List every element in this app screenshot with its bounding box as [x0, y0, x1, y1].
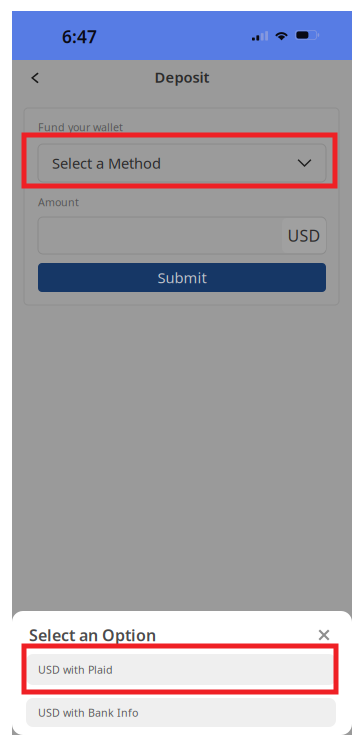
button[interactable]: USD with Plaid — [26, 654, 336, 685]
staticText: USD with Plaid — [38, 662, 113, 677]
staticText: 6:47 — [62, 25, 97, 48]
staticText: Select an Option — [29, 624, 156, 646]
staticText: Fund your wallet — [38, 120, 123, 134]
button[interactable]: Submit — [38, 263, 326, 292]
staticText: USD with Bank Info — [38, 705, 138, 720]
button[interactable]: Back — [20, 63, 50, 93]
staticText: Amount — [38, 195, 79, 209]
button[interactable]: Close — [311, 622, 337, 648]
button[interactable]: Select a Method — [38, 144, 326, 182]
button[interactable]: USD with Bank Info — [26, 698, 336, 727]
staticText: Select a Method — [52, 153, 161, 173]
staticText: Deposit — [154, 67, 209, 87]
staticText: Submit — [157, 268, 206, 287]
staticText: USD — [287, 225, 320, 246]
